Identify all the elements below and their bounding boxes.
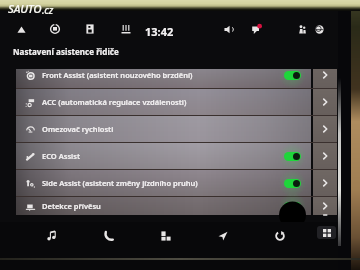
button[interactable]: Toggle Detekce přívěsu <box>284 202 301 211</box>
staticText: 13:42 <box>145 24 174 39</box>
button[interactable]: All apps <box>317 226 336 239</box>
staticText: Omezovač rychlosti <box>42 124 114 134</box>
staticText: SAUTO <box>8 1 42 17</box>
button[interactable]: Open ACC (automatická regulace vzdálenos… <box>313 89 337 115</box>
button[interactable]: Volume <box>220 21 236 37</box>
button[interactable]: Connectivity <box>311 21 327 37</box>
staticText: ACC (automatická regulace vzdálenosti) <box>42 97 187 107</box>
button[interactable]: ACC (automatická regulace vzdálenosti) <box>16 89 311 115</box>
button[interactable]: Profile <box>295 21 311 37</box>
staticText: Detekce přívěsu <box>42 201 101 211</box>
button[interactable]: Navigation <box>215 228 231 244</box>
button[interactable]: Terrain <box>13 21 29 37</box>
button[interactable]: Open Side Assist (asistent změny jízdníh… <box>313 170 337 196</box>
button[interactable]: Omezovač rychlosti <box>16 116 311 142</box>
staticText: Side Assist (asistent změny jízdního pru… <box>42 178 198 188</box>
button[interactable]: Toggle ECO Assist <box>284 152 301 161</box>
staticText: .cz <box>42 3 53 17</box>
button[interactable]: Side Assist (asistent změny jízdního pru… <box>16 170 311 196</box>
button[interactable]: Open Omezovač rychlosti <box>313 116 337 142</box>
button[interactable]: Detekce přívěsu <box>16 197 311 215</box>
button[interactable]: ECO Assist <box>16 143 311 169</box>
button[interactable]: Toggle Front Assist (asistent nouzového … <box>284 71 301 80</box>
staticText: ECO Assist <box>42 151 80 161</box>
staticText: Front Assist (asistent nouzového brzdění… <box>42 70 193 80</box>
button[interactable]: Messages <box>249 21 265 37</box>
button[interactable]: Parking <box>82 21 98 37</box>
button[interactable]: Phone <box>101 228 117 244</box>
button[interactable]: Assistance <box>272 228 288 244</box>
button[interactable]: Vehicle status <box>47 21 63 37</box>
button[interactable]: Open Front Assist (asistent nouzového br… <box>313 69 337 88</box>
button[interactable]: Open Detekce přívěsu <box>313 197 337 215</box>
button[interactable]: Toggle Side Assist (asistent změny jízdn… <box>284 179 301 188</box>
button[interactable]: Front Assist (asistent nouzového brzdění… <box>16 69 311 88</box>
button[interactable]: Open ECO Assist <box>313 143 337 169</box>
staticText: Nastavení asistence řidiče <box>13 46 119 57</box>
button[interactable]: Rear defrost <box>118 21 134 37</box>
button[interactable]: Media <box>44 228 60 244</box>
button[interactable]: Car <box>158 228 174 244</box>
